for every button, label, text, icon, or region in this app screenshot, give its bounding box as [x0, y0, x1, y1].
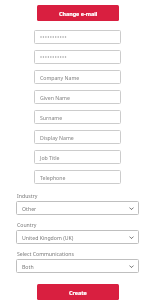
staticText: Telephone — [40, 174, 66, 181]
staticText: Other — [22, 205, 37, 212]
staticText: Select Communications — [17, 250, 75, 257]
button[interactable]: Given Name — [34, 90, 121, 104]
staticText: Industry — [17, 192, 38, 199]
button[interactable]: Change e-mail — [37, 5, 119, 21]
staticText: Country — [17, 221, 37, 228]
staticText: Company Name — [40, 74, 80, 81]
button[interactable]: Other — [16, 201, 139, 215]
button[interactable]: Both — [16, 259, 139, 273]
button[interactable]: Surname — [34, 110, 121, 124]
staticText: Display Name — [40, 134, 74, 141]
button[interactable]: Password — [34, 50, 121, 64]
button[interactable]: Job Title — [34, 150, 121, 164]
button[interactable]: Telephone — [34, 170, 121, 184]
staticText: Given Name — [40, 94, 70, 101]
button[interactable]: Create — [37, 284, 119, 300]
staticText: Change e-mail — [59, 10, 98, 17]
staticText: Job Title — [40, 154, 60, 161]
staticText: Surname — [40, 114, 63, 121]
button[interactable]: United Kingdom (UK) — [16, 230, 139, 244]
button[interactable]: Display Name — [34, 130, 121, 144]
staticText: Create — [69, 289, 87, 296]
staticText: Both — [22, 263, 34, 270]
button[interactable]: Password — [34, 30, 121, 44]
button[interactable]: Company Name — [34, 70, 121, 84]
staticText: United Kingdom (UK) — [22, 234, 74, 241]
